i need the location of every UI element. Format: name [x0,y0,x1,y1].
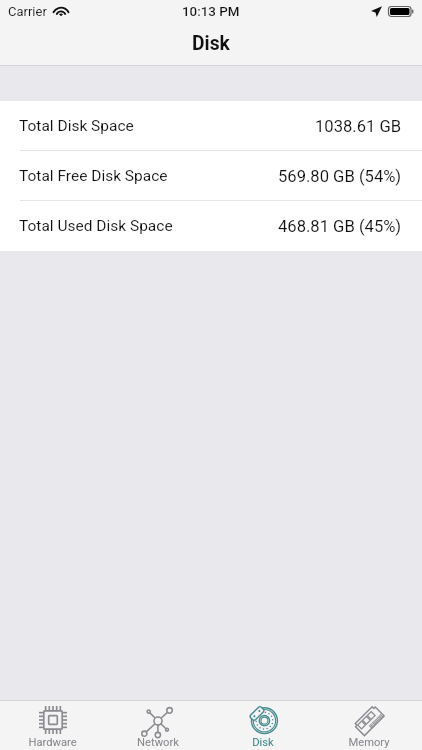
button[interactable]: Memory [316,701,422,750]
staticText: Hardware [28,736,77,749]
staticText: Total Used Disk Space [19,217,173,235]
button[interactable]: Hardware [0,701,105,750]
button[interactable]: Network [105,701,210,750]
button[interactable]: Total Free Disk Space [0,151,422,201]
staticText: Carrier [8,4,47,19]
button[interactable]: Total Used Disk Space [0,201,422,251]
staticText: Total Free Disk Space [19,167,168,185]
staticText: 468.81 GB (45%) [278,217,402,236]
staticText: 569.80 GB (54%) [278,167,402,186]
staticText: Memory [348,736,390,749]
staticText: Network [137,736,179,749]
staticText: Disk [252,736,274,749]
button[interactable]: Disk [210,701,316,750]
button[interactable]: Total Disk Space [0,101,422,151]
staticText: Total Disk Space [19,117,134,135]
staticText: Disk [192,32,230,55]
staticText: 1038.61 GB [315,117,402,136]
staticText: 10:13 PM [182,4,240,20]
